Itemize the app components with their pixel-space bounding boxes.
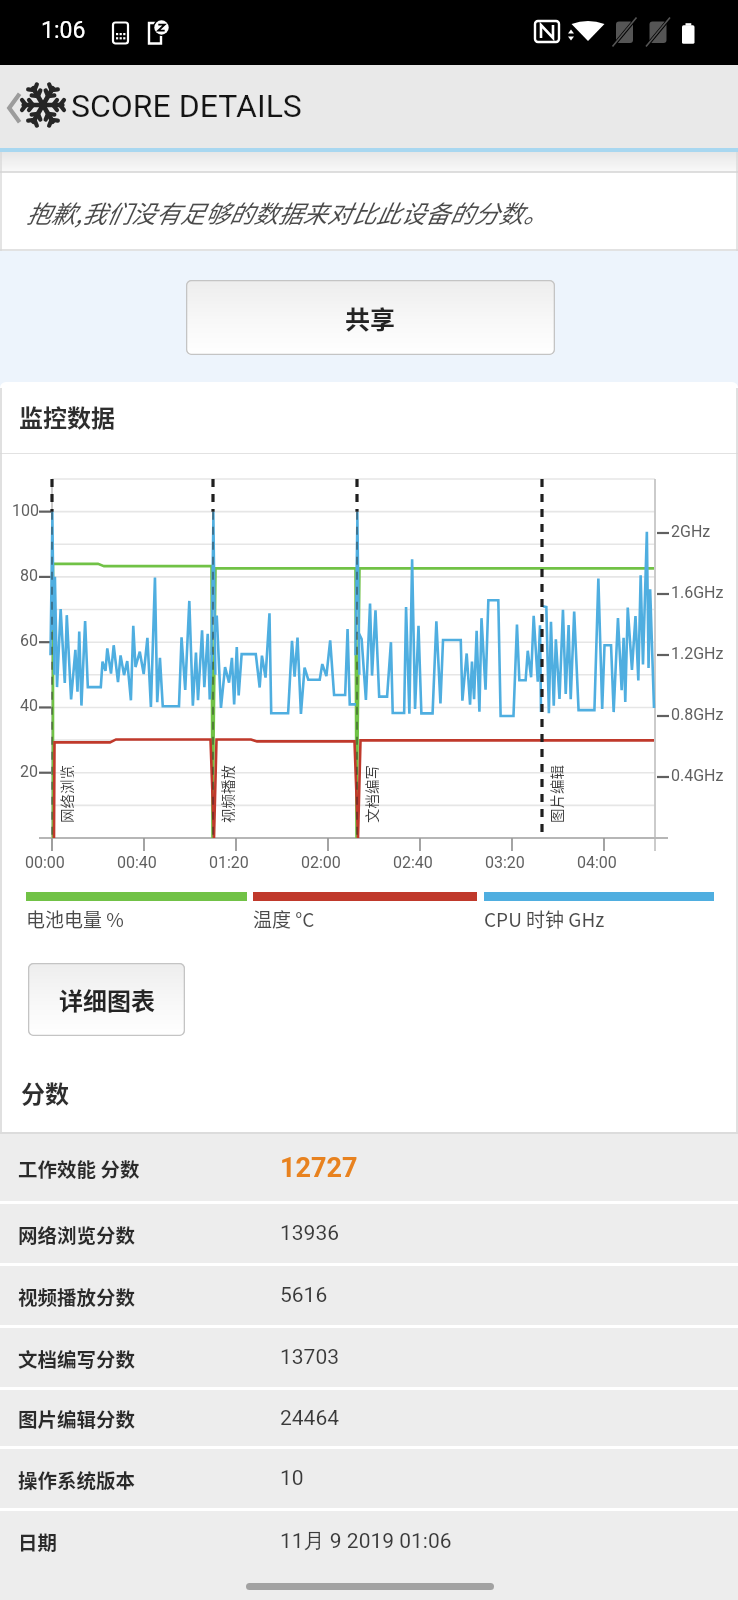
button[interactable]: Back bbox=[0, 65, 738, 152]
staticText: 0.8GHz bbox=[671, 705, 724, 724]
button[interactable]: 文档编写分数 bbox=[0, 1328, 738, 1387]
staticText: SCORE DETAILS bbox=[71, 87, 302, 125]
staticText: 02:40 bbox=[393, 853, 433, 872]
staticText: 视频播放分数 bbox=[18, 1282, 280, 1310]
staticText: 01:20 bbox=[209, 853, 249, 872]
staticText: 图片编辑 bbox=[546, 765, 564, 823]
button[interactable]: 网络浏览分数 bbox=[0, 1204, 738, 1263]
staticText: 5616 bbox=[280, 1283, 328, 1308]
staticText: 日期 bbox=[18, 1527, 280, 1555]
staticText: 24464 bbox=[280, 1406, 340, 1431]
staticText: 0.4GHz bbox=[671, 766, 724, 785]
staticText: 10 bbox=[280, 1466, 304, 1491]
staticText: 03:20 bbox=[485, 853, 525, 872]
staticText: 温度 °C bbox=[253, 905, 315, 933]
staticText: 文档编写 bbox=[361, 765, 379, 823]
staticText: 40 bbox=[20, 696, 38, 715]
staticText: 1.2GHz bbox=[671, 644, 724, 663]
staticText: 电池电量 % bbox=[26, 905, 124, 933]
staticText: 分数 bbox=[21, 1075, 69, 1110]
staticText: 1:06 bbox=[41, 17, 86, 44]
button[interactable]: 日期 bbox=[0, 1511, 738, 1571]
button[interactable]: 图片编辑分数 bbox=[0, 1390, 738, 1446]
staticText: 操作系统版本 bbox=[18, 1465, 280, 1493]
staticText: 13703 bbox=[280, 1345, 340, 1370]
staticText: 00:40 bbox=[117, 853, 157, 872]
staticText: 13936 bbox=[280, 1221, 340, 1246]
staticText: 04:00 bbox=[577, 853, 617, 872]
staticText: 详细图表 bbox=[59, 982, 155, 1017]
other: Back bbox=[4, 91, 24, 125]
staticText: 2GHz bbox=[671, 522, 711, 541]
staticText: 网络浏览分数 bbox=[18, 1220, 280, 1248]
staticText: 工作效能 分数 bbox=[18, 1154, 280, 1182]
button[interactable]: 操作系统版本 bbox=[0, 1449, 738, 1508]
staticText: 00:00 bbox=[25, 853, 65, 872]
button[interactable]: 视频播放分数 bbox=[0, 1266, 738, 1325]
staticText: 20 bbox=[20, 762, 38, 781]
staticText: 02:00 bbox=[301, 853, 341, 872]
staticText: 网络浏览 bbox=[56, 765, 74, 823]
staticText: CPU 时钟 GHz bbox=[484, 905, 605, 933]
staticText: 11月 9 2019 01:06 bbox=[280, 1528, 452, 1554]
staticText: 抱歉,我们没有足够的数据来对比此设备的分数。 bbox=[26, 195, 548, 230]
staticText: 100 bbox=[12, 501, 39, 520]
button[interactable]: 工作效能 分数 bbox=[0, 1134, 738, 1201]
staticText: 监控数据 bbox=[19, 399, 115, 434]
staticText: 60 bbox=[20, 631, 38, 650]
button[interactable]: 详细图表 bbox=[28, 963, 185, 1036]
staticText: 80 bbox=[20, 566, 38, 585]
staticText: 1.6GHz bbox=[671, 583, 724, 602]
button[interactable]: 共享 bbox=[186, 280, 555, 355]
staticText: 图片编辑分数 bbox=[18, 1404, 280, 1432]
staticText: 文档编写分数 bbox=[18, 1344, 280, 1372]
staticText: 12727 bbox=[280, 1152, 358, 1184]
staticText: 视频播放 bbox=[217, 765, 235, 823]
staticText: 共享 bbox=[345, 300, 396, 336]
